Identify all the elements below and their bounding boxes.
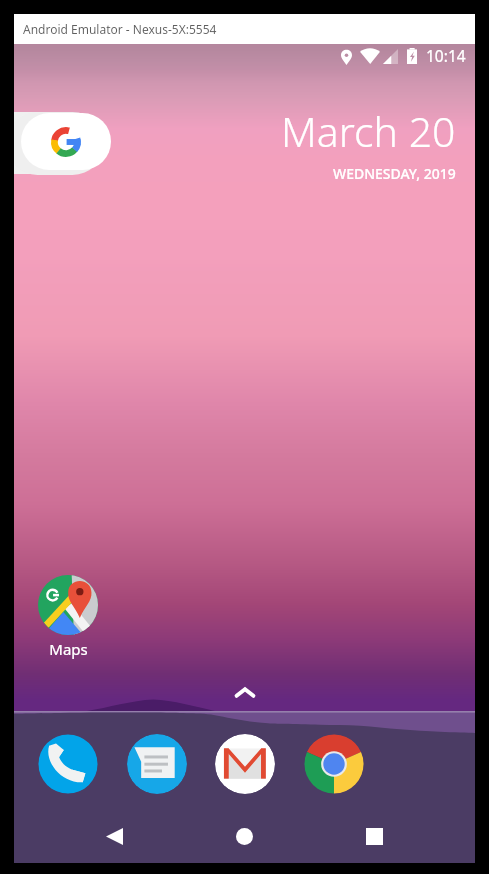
- button[interactable]: Maps: [23, 575, 113, 659]
- button[interactable]: Messages: [127, 734, 187, 794]
- button[interactable]: Back: [92, 814, 136, 858]
- button[interactable]: Open app drawer: [235, 687, 255, 698]
- button[interactable]: Recents: [352, 814, 396, 858]
- staticText: March 20: [281, 103, 456, 159]
- staticText: Maps: [49, 639, 88, 659]
- button[interactable]: Chrome: [304, 734, 364, 794]
- button[interactable]: Gmail: [215, 734, 275, 794]
- staticText: 10:14: [426, 45, 466, 66]
- staticText: WEDNESDAY, 2019: [333, 164, 456, 183]
- staticText: Android Emulator - Nexus-5X:5554: [23, 21, 217, 37]
- button[interactable]: Home: [222, 814, 266, 858]
- button[interactable]: Phone: [38, 734, 98, 794]
- button[interactable]: Google Search: [21, 113, 111, 170]
